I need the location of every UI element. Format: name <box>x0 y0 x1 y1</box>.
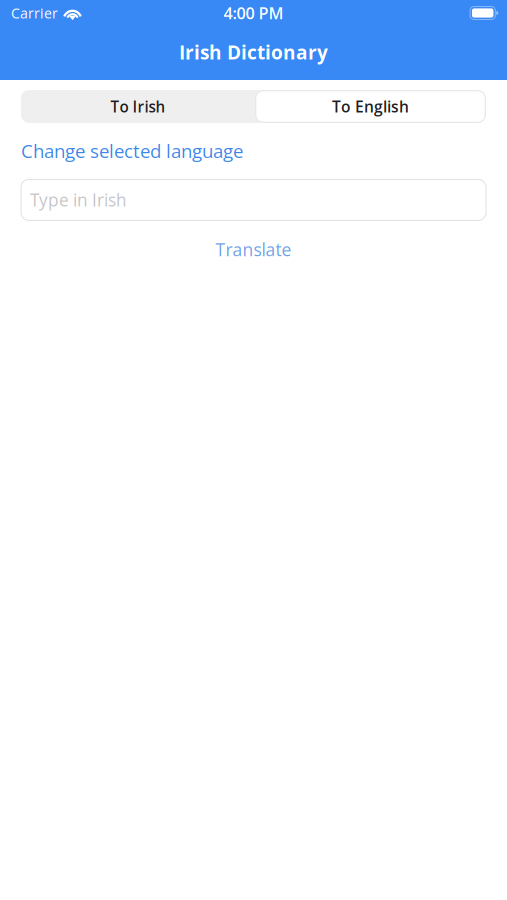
button[interactable]: To Irish <box>21 90 255 123</box>
button[interactable]: To English <box>255 90 486 123</box>
button[interactable]: Change selected language <box>21 138 243 163</box>
staticText: Type in Irish <box>30 188 127 212</box>
staticText: Translate <box>215 237 291 261</box>
staticText: To English <box>332 96 409 117</box>
staticText: Carrier <box>11 3 58 23</box>
button[interactable]: Type in Irish <box>21 179 486 220</box>
staticText: 4:00 PM <box>223 2 283 24</box>
staticText: To Irish <box>110 96 165 117</box>
button[interactable]: Translate <box>183 234 323 264</box>
staticText: Irish Dictionary <box>179 39 328 65</box>
staticText: Change selected language <box>21 138 243 163</box>
